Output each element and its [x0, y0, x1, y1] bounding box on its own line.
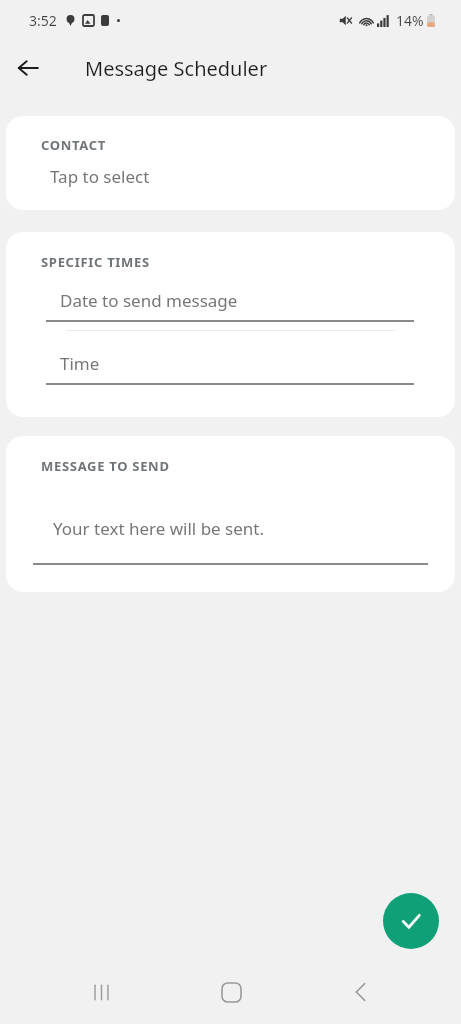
- button[interactable]: Confirm and schedule message: [383, 893, 439, 949]
- staticText: Your text here will be sent.: [53, 517, 265, 540]
- button[interactable]: CONTACT: [6, 116, 455, 210]
- staticText: Date to send message: [60, 289, 238, 312]
- staticText: Time: [60, 352, 100, 375]
- button[interactable]: Date to send message: [6, 289, 455, 322]
- button[interactable]: Time: [6, 352, 455, 385]
- staticText: 14%: [396, 11, 424, 30]
- staticText: CONTACT: [41, 136, 107, 154]
- staticText: MESSAGE TO SEND: [41, 457, 170, 475]
- button[interactable]: Back: [8, 48, 48, 88]
- button[interactable]: Recent apps: [73, 964, 129, 1020]
- staticText: SPECIFIC TIMES: [41, 253, 150, 271]
- staticText: 3:52: [29, 11, 57, 30]
- staticText: Message Scheduler: [85, 55, 268, 82]
- button[interactable]: Your text here will be sent.: [6, 517, 455, 565]
- button[interactable]: Home: [203, 964, 259, 1020]
- button[interactable]: Back: [332, 964, 388, 1020]
- staticText: Tap to select: [50, 165, 150, 188]
